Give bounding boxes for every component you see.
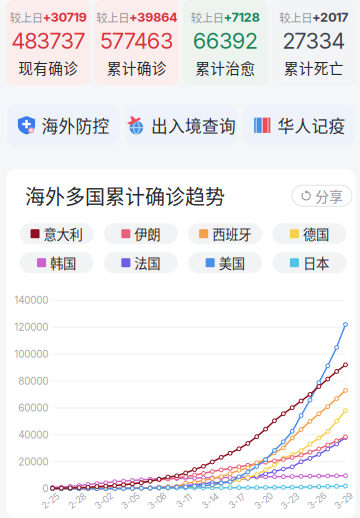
staticText: 3-02 [94,495,114,506]
staticText: +2017 [312,9,348,25]
staticText: 3-17 [228,495,246,506]
staticText: 日本 [303,253,329,272]
staticText: +30719 [43,9,87,25]
staticText: 华人记疫 [277,113,345,137]
button[interactable]: 较上日 [94,0,179,85]
button[interactable]: 德国 [272,223,346,244]
staticText: 法国 [134,253,160,272]
staticText: 3-23 [280,495,301,506]
staticText: +39864 [129,9,177,25]
staticText: 3-05 [120,495,140,506]
staticText: 海外多国累计确诊趋势 [25,181,225,210]
button[interactable]: 华人记疫 [243,105,355,145]
staticText: 较上日 [279,9,312,25]
staticText: 累计治愈 [195,57,255,78]
staticText: 140000 [14,294,48,306]
staticText: 60000 [18,402,48,414]
button[interactable]: 日本 [272,252,346,273]
staticText: 0 [42,483,48,495]
staticText: 较上日 [10,9,43,25]
staticText: 西班牙 [212,224,251,243]
staticText: 3-29 [333,495,353,506]
staticText: 3-08 [147,495,167,506]
staticText: 80000 [18,375,48,387]
staticText: 分享 [315,186,343,206]
staticText: 出入境查询 [151,113,236,137]
staticText: 100000 [14,348,48,360]
staticText: 累计死亡 [284,57,344,78]
staticText: 20000 [18,456,48,468]
staticText: 27334 [283,27,345,54]
staticText: 3-26 [307,495,327,506]
button[interactable]: 出入境查询 [125,105,237,145]
staticText: 3-14 [201,495,220,506]
staticText: 40000 [18,429,48,441]
button[interactable]: 法国 [104,252,178,273]
staticText: 伊朗 [134,224,160,243]
staticText: 577463 [100,27,173,54]
staticText: 现有确诊 [18,57,78,78]
staticText: 韩国 [50,253,76,272]
staticText: 德国 [303,224,329,243]
staticText: 2-28 [68,495,87,506]
staticText: 2-25 [41,495,60,506]
staticText: 意大利 [44,224,83,243]
button[interactable]: 韩国 [20,252,94,273]
button[interactable]: 较上日 [6,0,90,85]
staticText: 3-20 [254,495,274,506]
staticText: 累计确诊 [107,57,167,78]
staticText: 海外防控 [41,113,109,137]
staticText: +7128 [224,9,260,25]
button[interactable]: 西班牙 [188,223,262,244]
button[interactable]: 意大利 [20,223,94,244]
staticText: 3-11 [176,495,192,506]
button[interactable]: 分享 [292,185,352,206]
button[interactable]: 美国 [188,252,262,273]
button[interactable]: 较上日 [183,0,267,85]
button[interactable]: 较上日 [271,0,356,85]
staticText: 美国 [219,253,245,272]
button[interactable]: 伊朗 [104,223,178,244]
staticText: 483737 [12,27,85,54]
staticText: 较上日 [96,9,129,25]
staticText: 120000 [14,321,48,333]
button[interactable]: 海外防控 [7,105,119,145]
staticText: 66392 [193,27,257,54]
staticText: 较上日 [191,9,224,25]
